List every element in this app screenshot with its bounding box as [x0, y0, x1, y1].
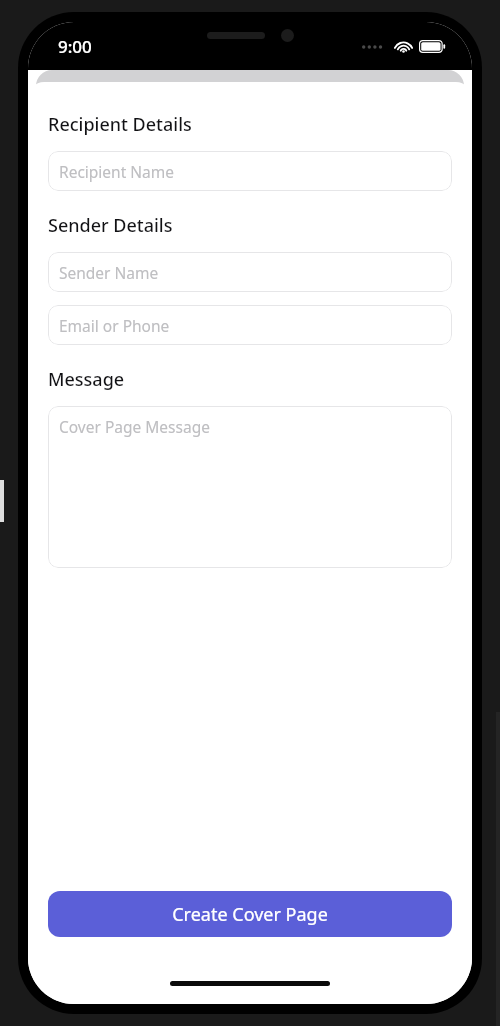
- staticText: Create Cover Page: [172, 902, 328, 927]
- staticText: Sender Name: [59, 262, 159, 283]
- button[interactable]: Create Cover Page: [48, 891, 452, 937]
- button[interactable]: Sender Name: [48, 252, 452, 292]
- staticText: Message: [48, 367, 125, 392]
- button[interactable]: Recipient Name: [48, 151, 452, 191]
- staticText: Recipient Details: [48, 112, 192, 137]
- staticText: 9:00: [58, 35, 92, 58]
- button[interactable]: Cover Page Message: [48, 406, 452, 568]
- staticText: Cover Page Message: [59, 416, 210, 437]
- staticText: Sender Details: [48, 213, 173, 238]
- button[interactable]: Email or Phone: [48, 305, 452, 345]
- staticText: Recipient Name: [59, 161, 175, 182]
- staticText: Email or Phone: [59, 315, 170, 336]
